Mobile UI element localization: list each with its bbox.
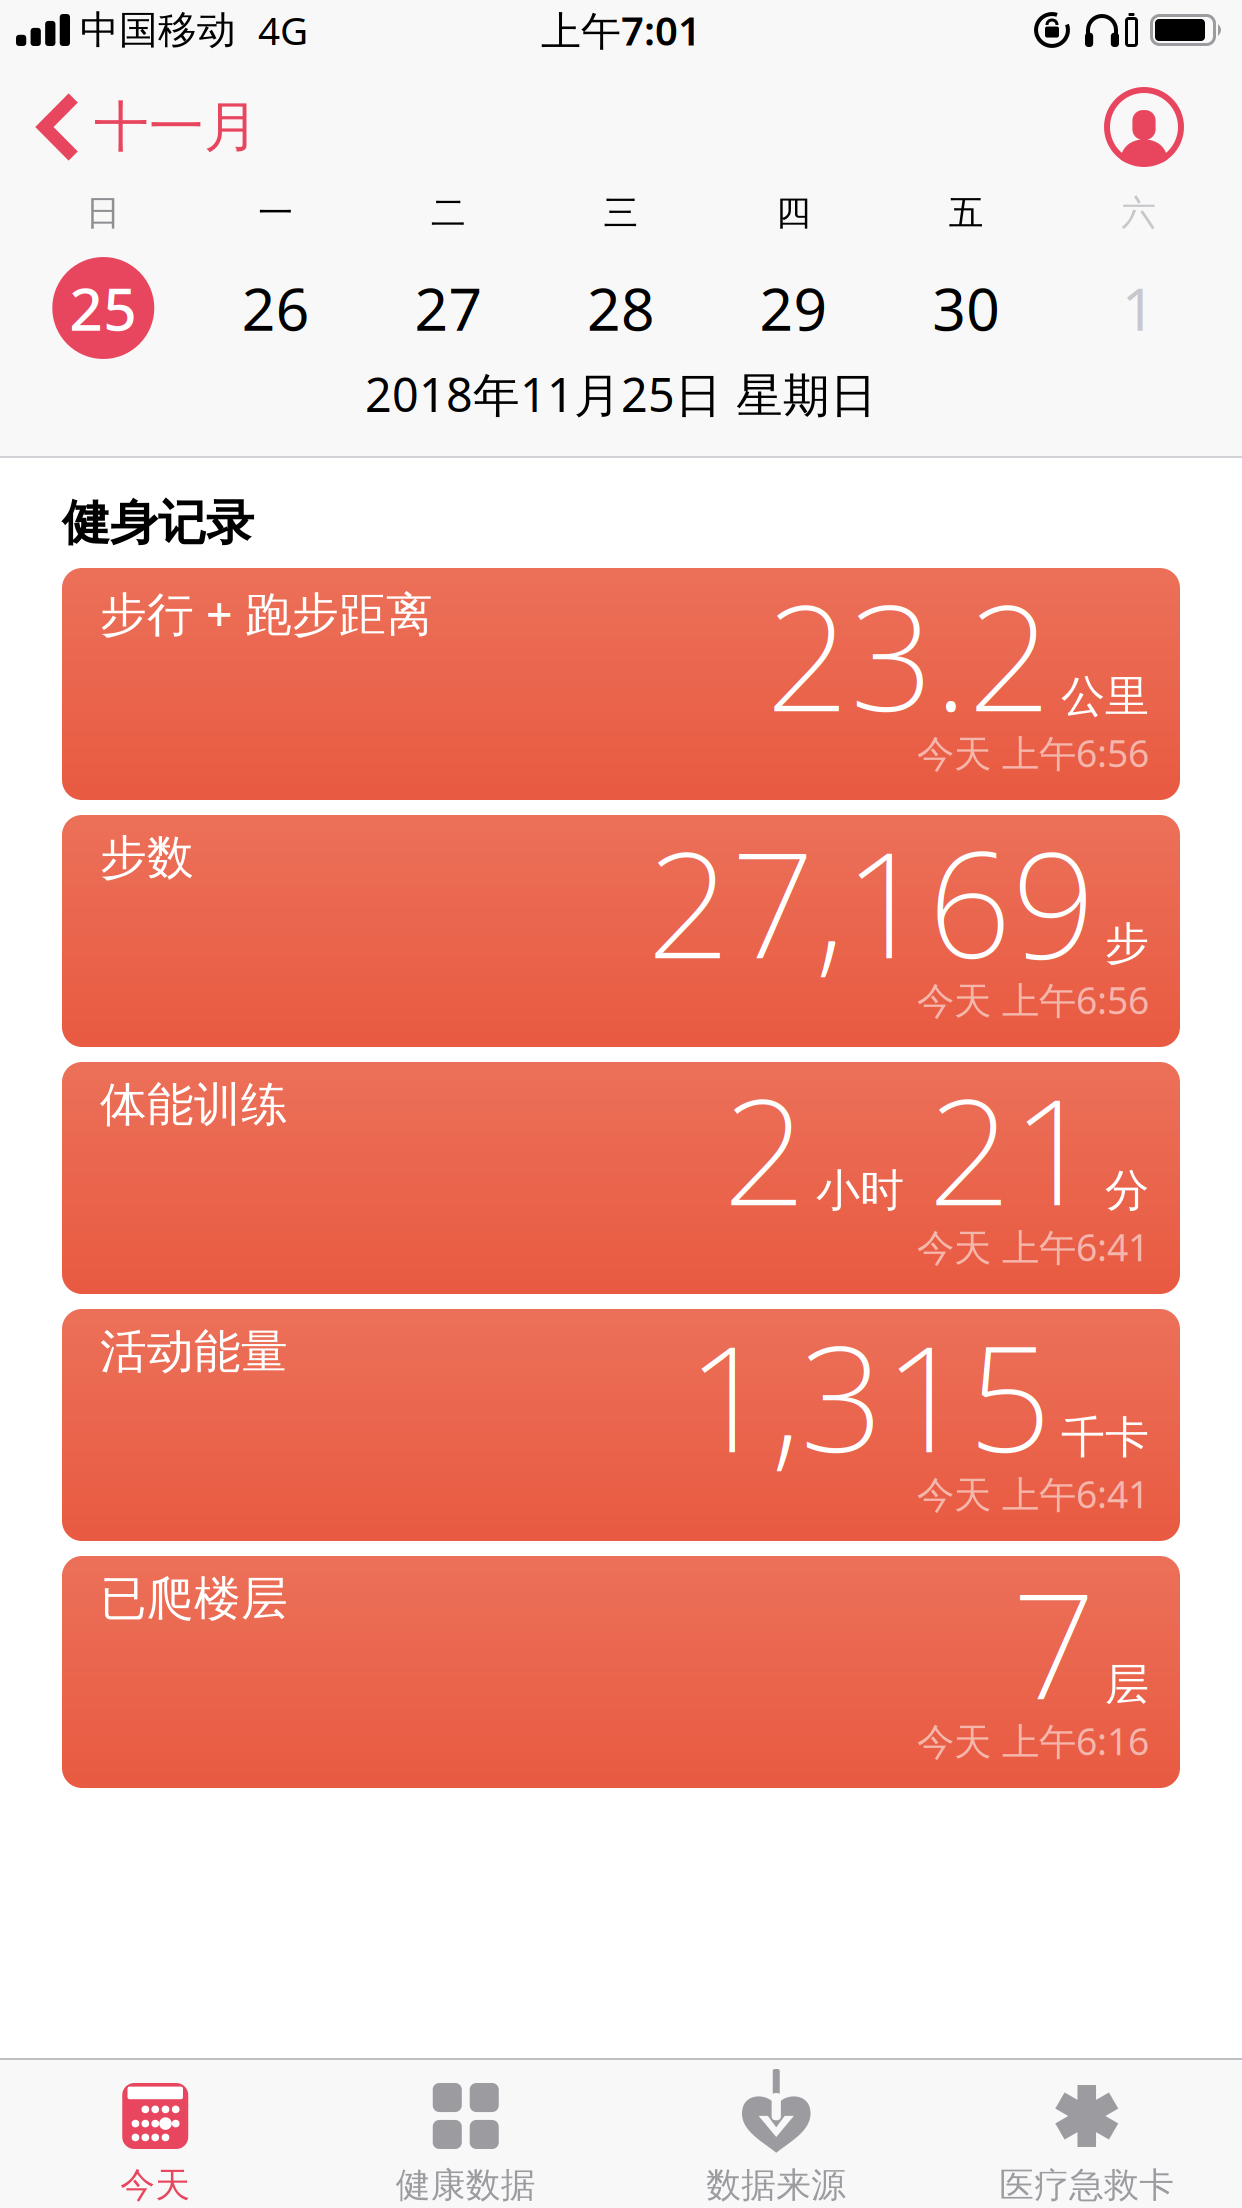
staticText: 27 (414, 269, 482, 347)
staticText: 26 (242, 269, 310, 347)
staticText: 今天 上午6:16 (917, 1716, 1149, 1766)
staticText: 2 (723, 1051, 807, 1246)
staticText: 23.2 (766, 557, 1052, 752)
staticText: 一 (258, 192, 293, 234)
staticText: 健康数据 (396, 2164, 536, 2207)
staticText: 六 (1121, 192, 1156, 234)
staticText: 今天 上午6:41 (917, 1222, 1149, 1272)
staticText: 千卡 (1061, 1411, 1149, 1465)
button[interactable]: 个人资料 (1104, 87, 1242, 167)
staticText: 今天 上午6:56 (917, 728, 1149, 778)
staticText: 已爬楼层 (100, 1570, 288, 1627)
staticText: 25 (69, 269, 137, 347)
staticText: 体能训练 (100, 1076, 288, 1133)
button[interactable]: 已爬楼层 (62, 1556, 1180, 1788)
button[interactable]: 25 (17, 257, 190, 359)
staticText: 公里 (1061, 670, 1149, 724)
staticText: 4G (258, 4, 308, 56)
staticText: 今天 上午6:41 (917, 1469, 1149, 1519)
staticText: 7 (1012, 1545, 1096, 1740)
staticText: 2018年11月25日 星期日 (365, 363, 877, 425)
staticText: 日 (86, 192, 121, 234)
button[interactable]: 26 (190, 269, 362, 347)
staticText: 二 (431, 192, 466, 234)
staticText: 1,315 (687, 1298, 1052, 1493)
staticText: 分 (1105, 1164, 1149, 1218)
staticText: 中国移动 (80, 6, 236, 54)
button[interactable]: 28 (535, 269, 707, 347)
staticText: 21 (928, 1051, 1096, 1246)
button[interactable]: 活动能量 (62, 1309, 1180, 1541)
staticText: 今天 上午6:56 (917, 975, 1149, 1025)
button[interactable]: 29 (707, 269, 880, 347)
staticText: 健身记录 (62, 493, 254, 552)
button[interactable]: 健康数据 (310, 2082, 621, 2207)
button[interactable]: 十一月 (0, 93, 259, 160)
staticText: 层 (1105, 1658, 1149, 1712)
staticText: 步数 (100, 829, 194, 886)
staticText: 30 (932, 269, 1000, 347)
staticText: 十一月 (94, 93, 259, 160)
button[interactable]: 1 (1052, 269, 1225, 347)
button[interactable]: 30 (880, 269, 1052, 347)
button[interactable]: 医疗急救卡 (931, 2082, 1242, 2207)
staticText: 28 (587, 269, 655, 347)
staticText: 四 (776, 192, 811, 234)
staticText: 1 (1122, 269, 1156, 347)
button[interactable]: 步数 (62, 815, 1180, 1047)
staticText: 三 (603, 192, 638, 234)
staticText: 上午7:01 (541, 3, 701, 56)
staticText: 活动能量 (100, 1323, 288, 1380)
staticText: 29 (760, 269, 828, 347)
button[interactable]: 今天 (0, 2082, 310, 2207)
button[interactable]: 27 (362, 269, 535, 347)
button[interactable]: 数据来源 (621, 2082, 931, 2207)
staticText: 小时 (816, 1164, 904, 1218)
staticText: 步 (1105, 917, 1149, 971)
staticText: 步行 + 跑步距离 (100, 582, 433, 644)
staticText: 数据来源 (706, 2164, 846, 2207)
button[interactable]: 体能训练 (62, 1062, 1180, 1294)
staticText: 医疗急救卡 (999, 2164, 1174, 2207)
staticText: 27,169 (647, 804, 1096, 999)
staticText: 今天 (120, 2164, 190, 2207)
staticText: 五 (949, 192, 984, 234)
button[interactable]: 步行 + 跑步距离 (62, 568, 1180, 800)
